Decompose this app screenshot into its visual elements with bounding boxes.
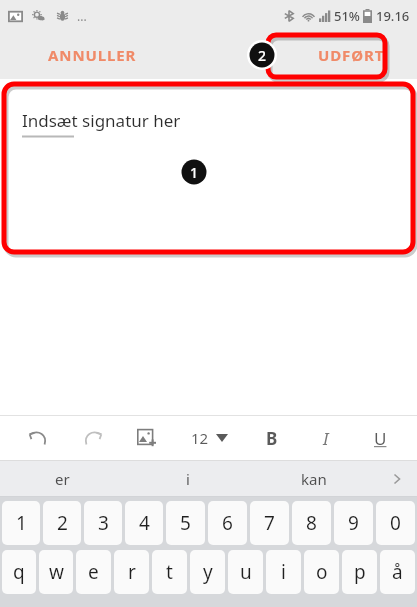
staticText: 1 <box>190 163 199 182</box>
button[interactable]: 0 <box>376 501 415 545</box>
staticText: i <box>281 559 286 585</box>
staticText: ANNULLER <box>48 45 137 65</box>
staticText: q <box>13 559 25 585</box>
button[interactable]: 6 <box>208 501 247 545</box>
staticText: I <box>323 427 329 450</box>
staticText: w <box>49 559 64 585</box>
button[interactable]: i <box>266 550 301 594</box>
button[interactable]: p <box>342 550 377 594</box>
button[interactable]: Font size 12 <box>174 416 245 460</box>
staticText: 19.16 <box>376 7 410 25</box>
staticText: 2 <box>57 510 68 536</box>
button[interactable]: Undo <box>10 416 65 460</box>
staticText: r <box>128 559 136 585</box>
staticText: 9 <box>348 510 359 536</box>
button[interactable]: kan <box>251 461 377 497</box>
button[interactable]: UDFØRT <box>308 37 395 73</box>
button[interactable]: e <box>76 550 111 594</box>
button[interactable]: i <box>125 461 251 497</box>
staticText: o <box>316 559 328 585</box>
staticText: 2 <box>258 46 267 65</box>
staticText: UDFØRT <box>318 45 385 65</box>
button[interactable]: Italic <box>299 416 353 460</box>
staticText: y <box>203 559 213 585</box>
button[interactable]: 2 <box>43 501 81 545</box>
staticText: 4 <box>139 510 150 536</box>
staticText: 8 <box>306 510 317 536</box>
staticText: U <box>374 427 387 450</box>
button[interactable]: 4 <box>125 501 163 545</box>
button[interactable]: q <box>2 550 36 594</box>
button[interactable]: w <box>39 550 73 594</box>
staticText: å <box>392 559 403 585</box>
staticText: 3 <box>98 510 109 536</box>
staticText: ... <box>77 8 87 24</box>
button[interactable]: 7 <box>250 501 289 545</box>
button[interactable]: er <box>0 461 125 497</box>
staticText: kan <box>301 469 327 489</box>
button[interactable]: y <box>190 550 225 594</box>
button[interactable]: Insert image <box>120 416 174 460</box>
button[interactable]: 3 <box>84 501 122 545</box>
button[interactable]: t <box>152 550 187 594</box>
button[interactable]: 9 <box>334 501 373 545</box>
button[interactable]: o <box>304 550 339 594</box>
staticText: u <box>240 559 252 585</box>
button[interactable]: ANNULLER <box>38 37 147 73</box>
staticText: 12 <box>191 428 209 448</box>
staticText: 7 <box>264 510 275 536</box>
staticText: t <box>166 559 173 585</box>
button[interactable]: 8 <box>292 501 331 545</box>
staticText: 6 <box>222 510 233 536</box>
staticText: B <box>266 427 278 450</box>
staticText: 1 <box>16 510 27 536</box>
button[interactable]: å <box>380 550 415 594</box>
button[interactable]: Redo <box>65 416 120 460</box>
button[interactable]: More suggestions <box>377 461 417 497</box>
button[interactable]: r <box>114 550 149 594</box>
staticText: p <box>354 559 366 585</box>
button[interactable]: Indsæt signatur her <box>0 87 417 255</box>
button[interactable]: u <box>228 550 263 594</box>
staticText: 0 <box>390 510 401 536</box>
staticText: er <box>55 469 70 489</box>
staticText: 5 <box>180 510 191 536</box>
button[interactable]: Bold <box>245 416 299 460</box>
button[interactable]: Underline <box>353 416 407 460</box>
button[interactable]: 5 <box>166 501 205 545</box>
staticText: Indsæt signatur her <box>22 109 181 132</box>
staticText: e <box>88 559 99 585</box>
staticText: 51% <box>334 7 360 25</box>
button[interactable]: 1 <box>2 501 40 545</box>
staticText: i <box>186 469 190 489</box>
